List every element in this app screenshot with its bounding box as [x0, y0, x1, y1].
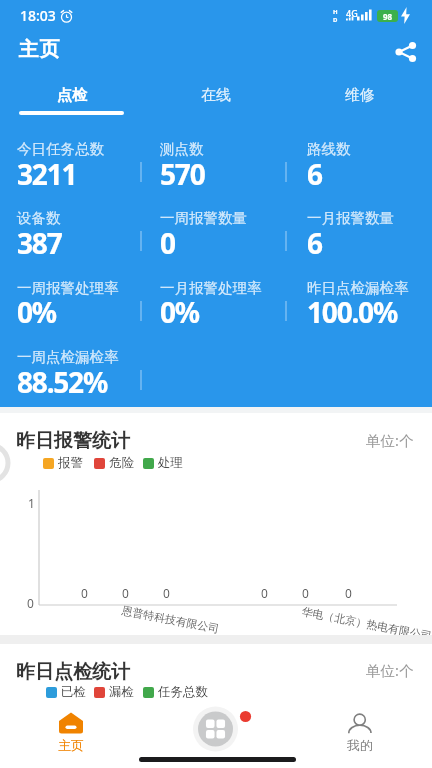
staticText: 98 — [383, 11, 393, 22]
staticText: 1 — [28, 495, 35, 511]
staticText: D — [333, 16, 338, 24]
staticText: 一周报警处理率 — [17, 279, 119, 297]
staticText: 测点数 — [160, 140, 204, 158]
staticText: 昨日点检漏检率 — [307, 279, 409, 297]
staticText: 主页 — [58, 737, 84, 753]
staticText: 0 — [302, 585, 309, 601]
staticText: 任务总数 — [158, 684, 208, 700]
staticText: 单位:个 — [366, 660, 414, 680]
staticText: 一月报警数量 — [307, 209, 394, 227]
staticText: 0 — [261, 585, 268, 601]
staticText: 0 — [163, 585, 170, 601]
staticText: 一周报警数量 — [160, 209, 247, 227]
staticText: 维修 — [345, 86, 375, 105]
button[interactable]: 在线 — [144, 80, 288, 116]
staticText: 单位:个 — [366, 430, 414, 450]
staticText: 恩普特科技有限公司 — [121, 603, 221, 636]
staticText: 387 — [17, 224, 62, 262]
staticText: 路线数 — [307, 140, 351, 158]
staticText: 18:03 — [20, 6, 56, 25]
staticText: 0% — [17, 293, 56, 331]
staticText: 0 — [122, 585, 129, 601]
staticText: 报警 — [58, 455, 83, 471]
staticText: 4G — [346, 7, 358, 19]
staticText: 570 — [160, 155, 205, 193]
staticText: 危险 — [109, 455, 134, 471]
staticText: 0 — [160, 224, 175, 262]
staticText: 在线 — [201, 86, 231, 105]
staticText: 88.52% — [17, 363, 107, 401]
staticText: 0 — [27, 595, 34, 611]
staticText: 漏检 — [109, 684, 134, 700]
staticText: 0 — [81, 585, 88, 601]
staticText: 华电（北京）热电有限公司 — [301, 604, 432, 643]
staticText: 100.0% — [307, 293, 397, 331]
staticText: 设备数 — [17, 209, 61, 227]
staticText: 昨日报警统计 — [16, 429, 130, 453]
staticText: 我的 — [347, 737, 373, 753]
staticText: 昨日点检统计 — [16, 660, 130, 684]
button[interactable] — [186, 702, 254, 756]
staticText: H — [333, 8, 338, 16]
staticText: 点检 — [57, 86, 87, 105]
button[interactable]: 点检 — [0, 80, 144, 116]
staticText: 处理 — [158, 455, 183, 471]
staticText: 一月报警处理率 — [160, 279, 262, 297]
staticText: 今日任务总数 — [17, 140, 104, 158]
button[interactable]: 维修 — [288, 80, 432, 116]
button[interactable]: 我的 — [330, 706, 390, 756]
staticText: 6 — [307, 155, 322, 193]
button[interactable] — [386, 36, 420, 68]
staticText: 3211 — [17, 155, 77, 193]
staticText: 0 — [345, 585, 352, 601]
staticText: 6 — [307, 224, 322, 262]
staticText: 主页 — [18, 37, 60, 62]
button[interactable]: 主页 — [36, 706, 106, 756]
staticText: 一周点检漏检率 — [17, 348, 119, 366]
staticText: 已检 — [61, 684, 86, 700]
staticText: 0% — [160, 293, 199, 331]
